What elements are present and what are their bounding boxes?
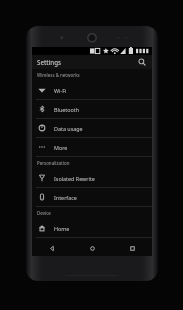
staticText: Interface: [54, 194, 77, 201]
staticText: Bluetooth: [54, 106, 80, 113]
staticText: Device: [37, 210, 51, 216]
button[interactable]: Home: [72, 240, 112, 256]
button[interactable]: Wi-Fi: [32, 81, 152, 99]
staticText: Settings: [37, 58, 136, 66]
button[interactable]: Home: [32, 219, 152, 237]
staticText: Personalization: [37, 160, 70, 166]
button[interactable]: Back: [32, 240, 72, 256]
button[interactable]: Data usage: [32, 119, 152, 137]
staticText: Data usage: [54, 125, 83, 132]
button[interactable]: More: [32, 138, 152, 156]
button[interactable]: Isolated Rewrite: [32, 169, 152, 187]
staticText: Wi-Fi: [54, 87, 67, 94]
staticText: Isolated Rewrite: [54, 175, 95, 182]
button[interactable]: Bluetooth: [32, 100, 152, 118]
button[interactable]: Interface: [32, 188, 152, 206]
staticText: Home: [54, 225, 70, 232]
staticText: More: [54, 144, 68, 151]
button[interactable]: Recents: [112, 240, 152, 256]
staticText: Wireless & networks: [37, 72, 80, 78]
button[interactable]: Search: [136, 56, 148, 68]
